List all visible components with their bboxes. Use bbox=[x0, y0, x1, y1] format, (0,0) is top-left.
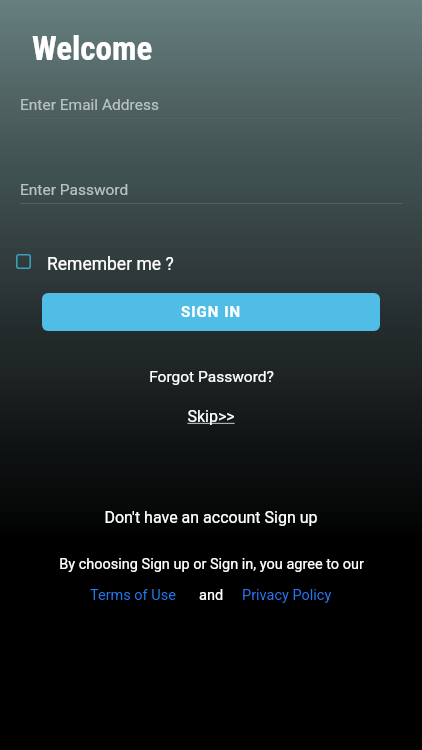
button[interactable]: Remember me checkbox bbox=[16, 249, 174, 273]
staticText: and bbox=[199, 587, 224, 604]
button[interactable]: Privacy Policy bbox=[242, 587, 332, 604]
button[interactable]: Skip>> bbox=[187, 407, 235, 426]
staticText: SIGN IN bbox=[181, 303, 242, 321]
other: Remember me checkbox bbox=[16, 254, 31, 269]
staticText: Welcome bbox=[32, 29, 153, 68]
button[interactable]: Enter Password bbox=[20, 174, 402, 206]
staticText: By choosing Sign up or Sign in, you agre… bbox=[59, 556, 364, 573]
button[interactable]: Don't have an account Sign up bbox=[104, 508, 318, 527]
staticText: Enter Email Address bbox=[20, 96, 159, 114]
button[interactable]: SIGN IN bbox=[42, 293, 380, 331]
staticText: Enter Password bbox=[20, 181, 129, 199]
button[interactable]: Enter Email Address bbox=[20, 89, 402, 121]
button[interactable]: Forgot Password? bbox=[149, 368, 274, 386]
button[interactable]: Terms of Use bbox=[90, 587, 176, 604]
staticText: Remember me ? bbox=[47, 254, 174, 275]
